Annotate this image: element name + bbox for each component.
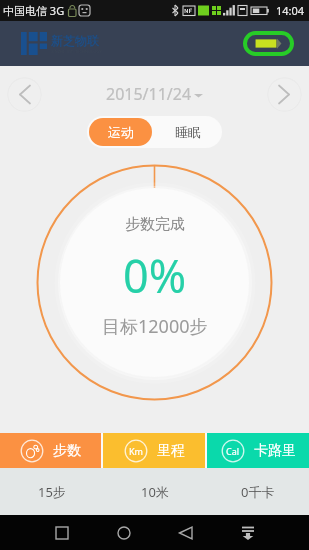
staticText: 10米 [141, 483, 169, 501]
button[interactable]: 10米 [103, 468, 206, 515]
button[interactable]: 0千卡 [206, 468, 309, 515]
button[interactable]: 步数 [0, 433, 101, 468]
button[interactable]: Previous day [7, 77, 42, 112]
button[interactable]: Cal [207, 433, 309, 468]
staticText: 0% [123, 245, 187, 306]
button[interactable]: 步数完成 [60, 188, 249, 377]
button[interactable]: 运动 [89, 118, 152, 146]
staticText: 中国电信 3G [3, 3, 65, 18]
staticText: 卡路里 [254, 442, 296, 460]
staticText: 新芝物联 [51, 33, 99, 48]
staticText: 运动 [108, 124, 134, 140]
staticText: 14:04 [276, 3, 305, 18]
staticText: 0千卡 [241, 483, 275, 501]
button[interactable]: 15步 [0, 468, 103, 515]
staticText: 睡眠 [175, 124, 201, 140]
staticText: 2015/11/24 [106, 83, 192, 105]
staticText: Km [129, 445, 143, 457]
staticText: 步数 [53, 442, 81, 460]
button[interactable]: Download [230, 515, 266, 550]
button[interactable]: Next day [267, 77, 302, 112]
button[interactable]: Recent apps [44, 515, 80, 550]
staticText: 里程 [157, 442, 185, 460]
staticText: Cal [226, 445, 240, 457]
button[interactable]: Home [106, 515, 142, 550]
staticText: 步数完成 [125, 215, 185, 234]
staticText: 15步 [38, 483, 66, 501]
button[interactable]: Device battery [243, 31, 294, 56]
button[interactable]: Km [103, 433, 205, 468]
staticText: 目标12000步 [102, 314, 208, 339]
button[interactable]: 2015/11/24 [106, 83, 203, 105]
button[interactable]: 睡眠 [154, 116, 222, 148]
button[interactable]: Back [168, 515, 204, 550]
